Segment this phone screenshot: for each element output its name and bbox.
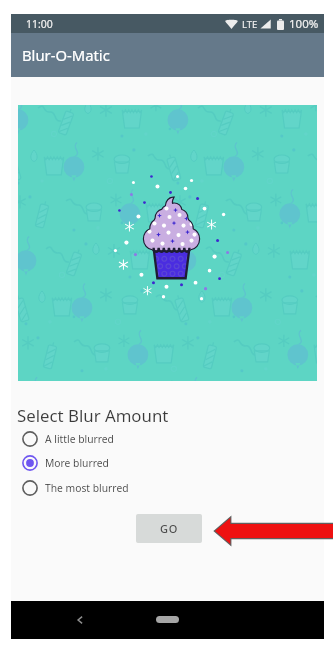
staticText: 11:00 [26, 17, 53, 31]
staticText: 100% [289, 16, 319, 32]
button[interactable]: A little blurred [11, 427, 324, 451]
button[interactable]: Home [156, 616, 179, 623]
other: Arrow pointing at the GO button [215, 518, 333, 544]
staticText: A little blurred [45, 432, 114, 446]
button[interactable]: More blurred [11, 451, 324, 475]
button[interactable]: GO [136, 514, 202, 543]
staticText: Blur-O-Matic [22, 45, 110, 65]
staticText: Select Blur Amount [17, 404, 169, 427]
staticText: LTE [242, 18, 258, 31]
staticText: More blurred [45, 456, 109, 470]
staticText: The most blurred [45, 481, 129, 495]
button[interactable]: Back [68, 608, 92, 632]
button[interactable]: The most blurred [11, 476, 324, 500]
staticText: GO [160, 521, 179, 536]
